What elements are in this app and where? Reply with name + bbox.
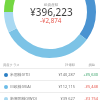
staticText: -¥5,448 bbox=[77, 84, 98, 89]
staticText: 評価額 bbox=[55, 63, 75, 67]
staticText: 資産クラス bbox=[3, 63, 20, 67]
staticText: ¥112,115 bbox=[55, 84, 75, 89]
staticText: +¥5,630 bbox=[77, 72, 98, 77]
button[interactable]: 日欧株(VEA) bbox=[0, 81, 100, 92]
staticText: -¥3,754 bbox=[77, 96, 98, 100]
staticText: -¥2,874 bbox=[40, 16, 62, 24]
button[interactable]: 米国株(VTI) bbox=[0, 69, 100, 80]
staticText: 総資産額 bbox=[44, 3, 59, 8]
staticText: 米国株(VTI) bbox=[10, 72, 30, 77]
staticText: ¥140,287 bbox=[55, 72, 75, 77]
button[interactable]: 新興国株(VWO) bbox=[0, 93, 100, 100]
staticText: 損益 bbox=[77, 63, 95, 67]
staticText: ¥396,223 bbox=[30, 5, 73, 19]
staticText: 新興国株(VWO) bbox=[10, 96, 37, 100]
staticText: 日欧株(VEA) bbox=[10, 84, 31, 89]
staticText: ¥39,627 bbox=[55, 96, 75, 100]
